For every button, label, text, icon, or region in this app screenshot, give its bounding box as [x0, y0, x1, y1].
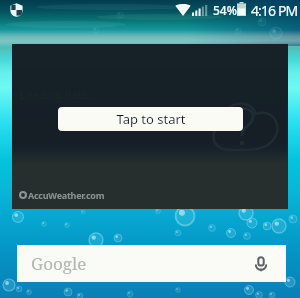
staticText: Google	[31, 252, 87, 275]
button[interactable]: Voice search	[248, 251, 273, 276]
staticText: AccuWeather.com	[28, 189, 105, 201]
staticText: 4:16 PM	[251, 1, 298, 20]
button[interactable]: Tap to start	[58, 107, 243, 131]
button[interactable]: Loading data...	[12, 44, 288, 209]
staticText: Tap to start	[116, 110, 186, 128]
staticText: 54%	[213, 2, 237, 18]
button[interactable]: Google	[17, 245, 286, 282]
